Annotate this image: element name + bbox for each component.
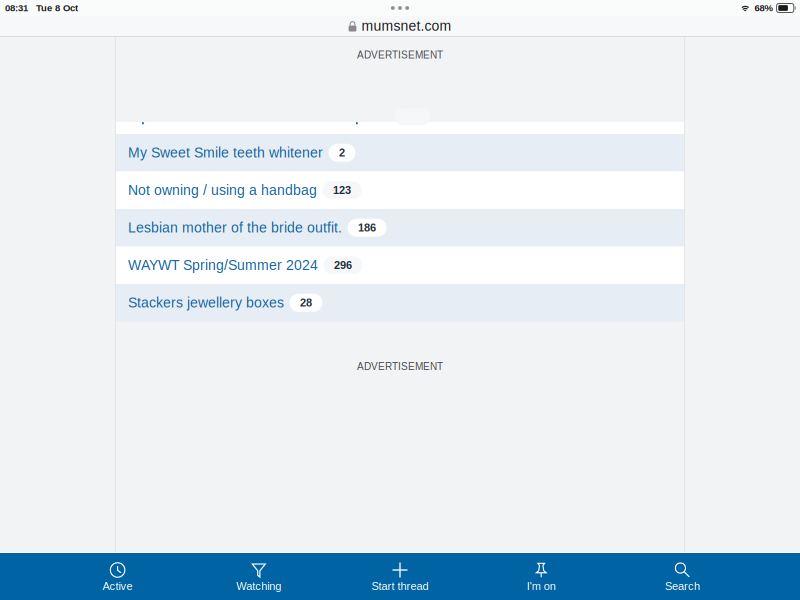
staticText: 68% xyxy=(755,3,773,13)
button[interactable]: Start thread xyxy=(329,553,471,600)
staticText: 186 xyxy=(358,222,376,234)
staticText: 28 xyxy=(300,297,312,309)
staticText: 296 xyxy=(334,259,352,271)
staticText: 08:31 xyxy=(5,3,28,13)
button[interactable]: mumsnet.com xyxy=(0,16,800,36)
staticText: 123 xyxy=(333,184,351,196)
staticText: 2 xyxy=(339,147,345,159)
button[interactable]: I'm on xyxy=(471,553,612,600)
staticText: My Sweet Smile teeth whitener xyxy=(128,145,323,160)
staticText: ADVERTISEMENT xyxy=(357,49,443,61)
button[interactable]: Search xyxy=(612,553,753,600)
button[interactable]: My Sweet Smile teeth whitener xyxy=(116,134,684,171)
staticText: mumsnet.com xyxy=(361,18,451,34)
staticText: ADVERTISEMENT xyxy=(357,361,443,372)
staticText: Search xyxy=(665,580,700,592)
staticText: I'm on xyxy=(527,580,556,592)
staticText: Watching xyxy=(236,580,281,592)
staticText: Not owning / using a handbag xyxy=(128,182,317,198)
button[interactable]: WAYWT Spring/Summer 2024 xyxy=(116,246,684,284)
staticText: Tue 8 Oct xyxy=(36,3,78,13)
button[interactable]: Active xyxy=(47,553,188,600)
button[interactable]: Lesbian mother of the bride outfit. xyxy=(116,209,684,246)
button[interactable]: Stackers jewellery boxes xyxy=(116,284,684,321)
staticText: Start thread xyxy=(371,580,428,592)
staticText: Stackers jewellery boxes xyxy=(128,295,284,310)
button[interactable]: Watching xyxy=(188,553,329,600)
staticText: Lesbian mother of the bride outfit. xyxy=(128,220,342,235)
staticText: Active xyxy=(103,580,133,592)
button[interactable]: Not owning / using a handbag xyxy=(116,171,684,209)
staticText: WAYWT Spring/Summer 2024 xyxy=(128,257,318,273)
